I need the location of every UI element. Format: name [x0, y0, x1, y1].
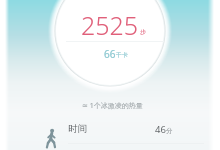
- staticText: 分: [166, 127, 173, 135]
- staticText: 46: [155, 123, 166, 136]
- staticText: ≈ 1个冰激凌的热量: [82, 101, 143, 111]
- staticText: 66: [104, 47, 116, 61]
- button[interactable]: 时间: [0, 118, 220, 144]
- staticText: 2525: [81, 8, 139, 42]
- other: Walking: [44, 126, 58, 150]
- staticText: 千卡: [116, 51, 128, 59]
- staticText: 步: [140, 28, 146, 36]
- staticText: 时间: [68, 123, 87, 135]
